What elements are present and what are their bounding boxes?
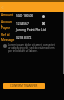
staticText: Account number	[1, 20, 13, 27]
button[interactable]: Amount	[0, 12, 64, 19]
staticText: Payee	[1, 26, 10, 30]
button[interactable]: Account number	[0, 20, 64, 27]
button[interactable]: Payee	[0, 26, 64, 32]
button[interactable]: Remove	[41, 21, 45, 25]
staticText: por incididunt ut labore.	[8, 49, 38, 53]
staticText: SGD 180.00	[16, 14, 34, 18]
button[interactable]: CONFIRM TRANSFER	[3, 83, 45, 89]
staticText: 0293 8372	[16, 36, 32, 40]
button[interactable]: Ref id	[0, 33, 64, 38]
staticText: Jurong Point Pte Ltd	[16, 28, 46, 32]
staticText: Ref id	[1, 33, 10, 37]
staticText: Lorem ipsum dolor sit amet, consectet	[8, 43, 55, 47]
staticText: Amount	[1, 13, 14, 17]
button[interactable]: Information	[41, 14, 45, 18]
staticText: ur adipiscing elit, sed do eiusmod tem	[8, 46, 55, 50]
staticText: 1234567	[16, 22, 29, 26]
staticText: Message	[1, 38, 15, 42]
button[interactable]: Back	[0, 2, 5, 12]
staticText: CONFIRM TRANSFER	[10, 84, 38, 88]
